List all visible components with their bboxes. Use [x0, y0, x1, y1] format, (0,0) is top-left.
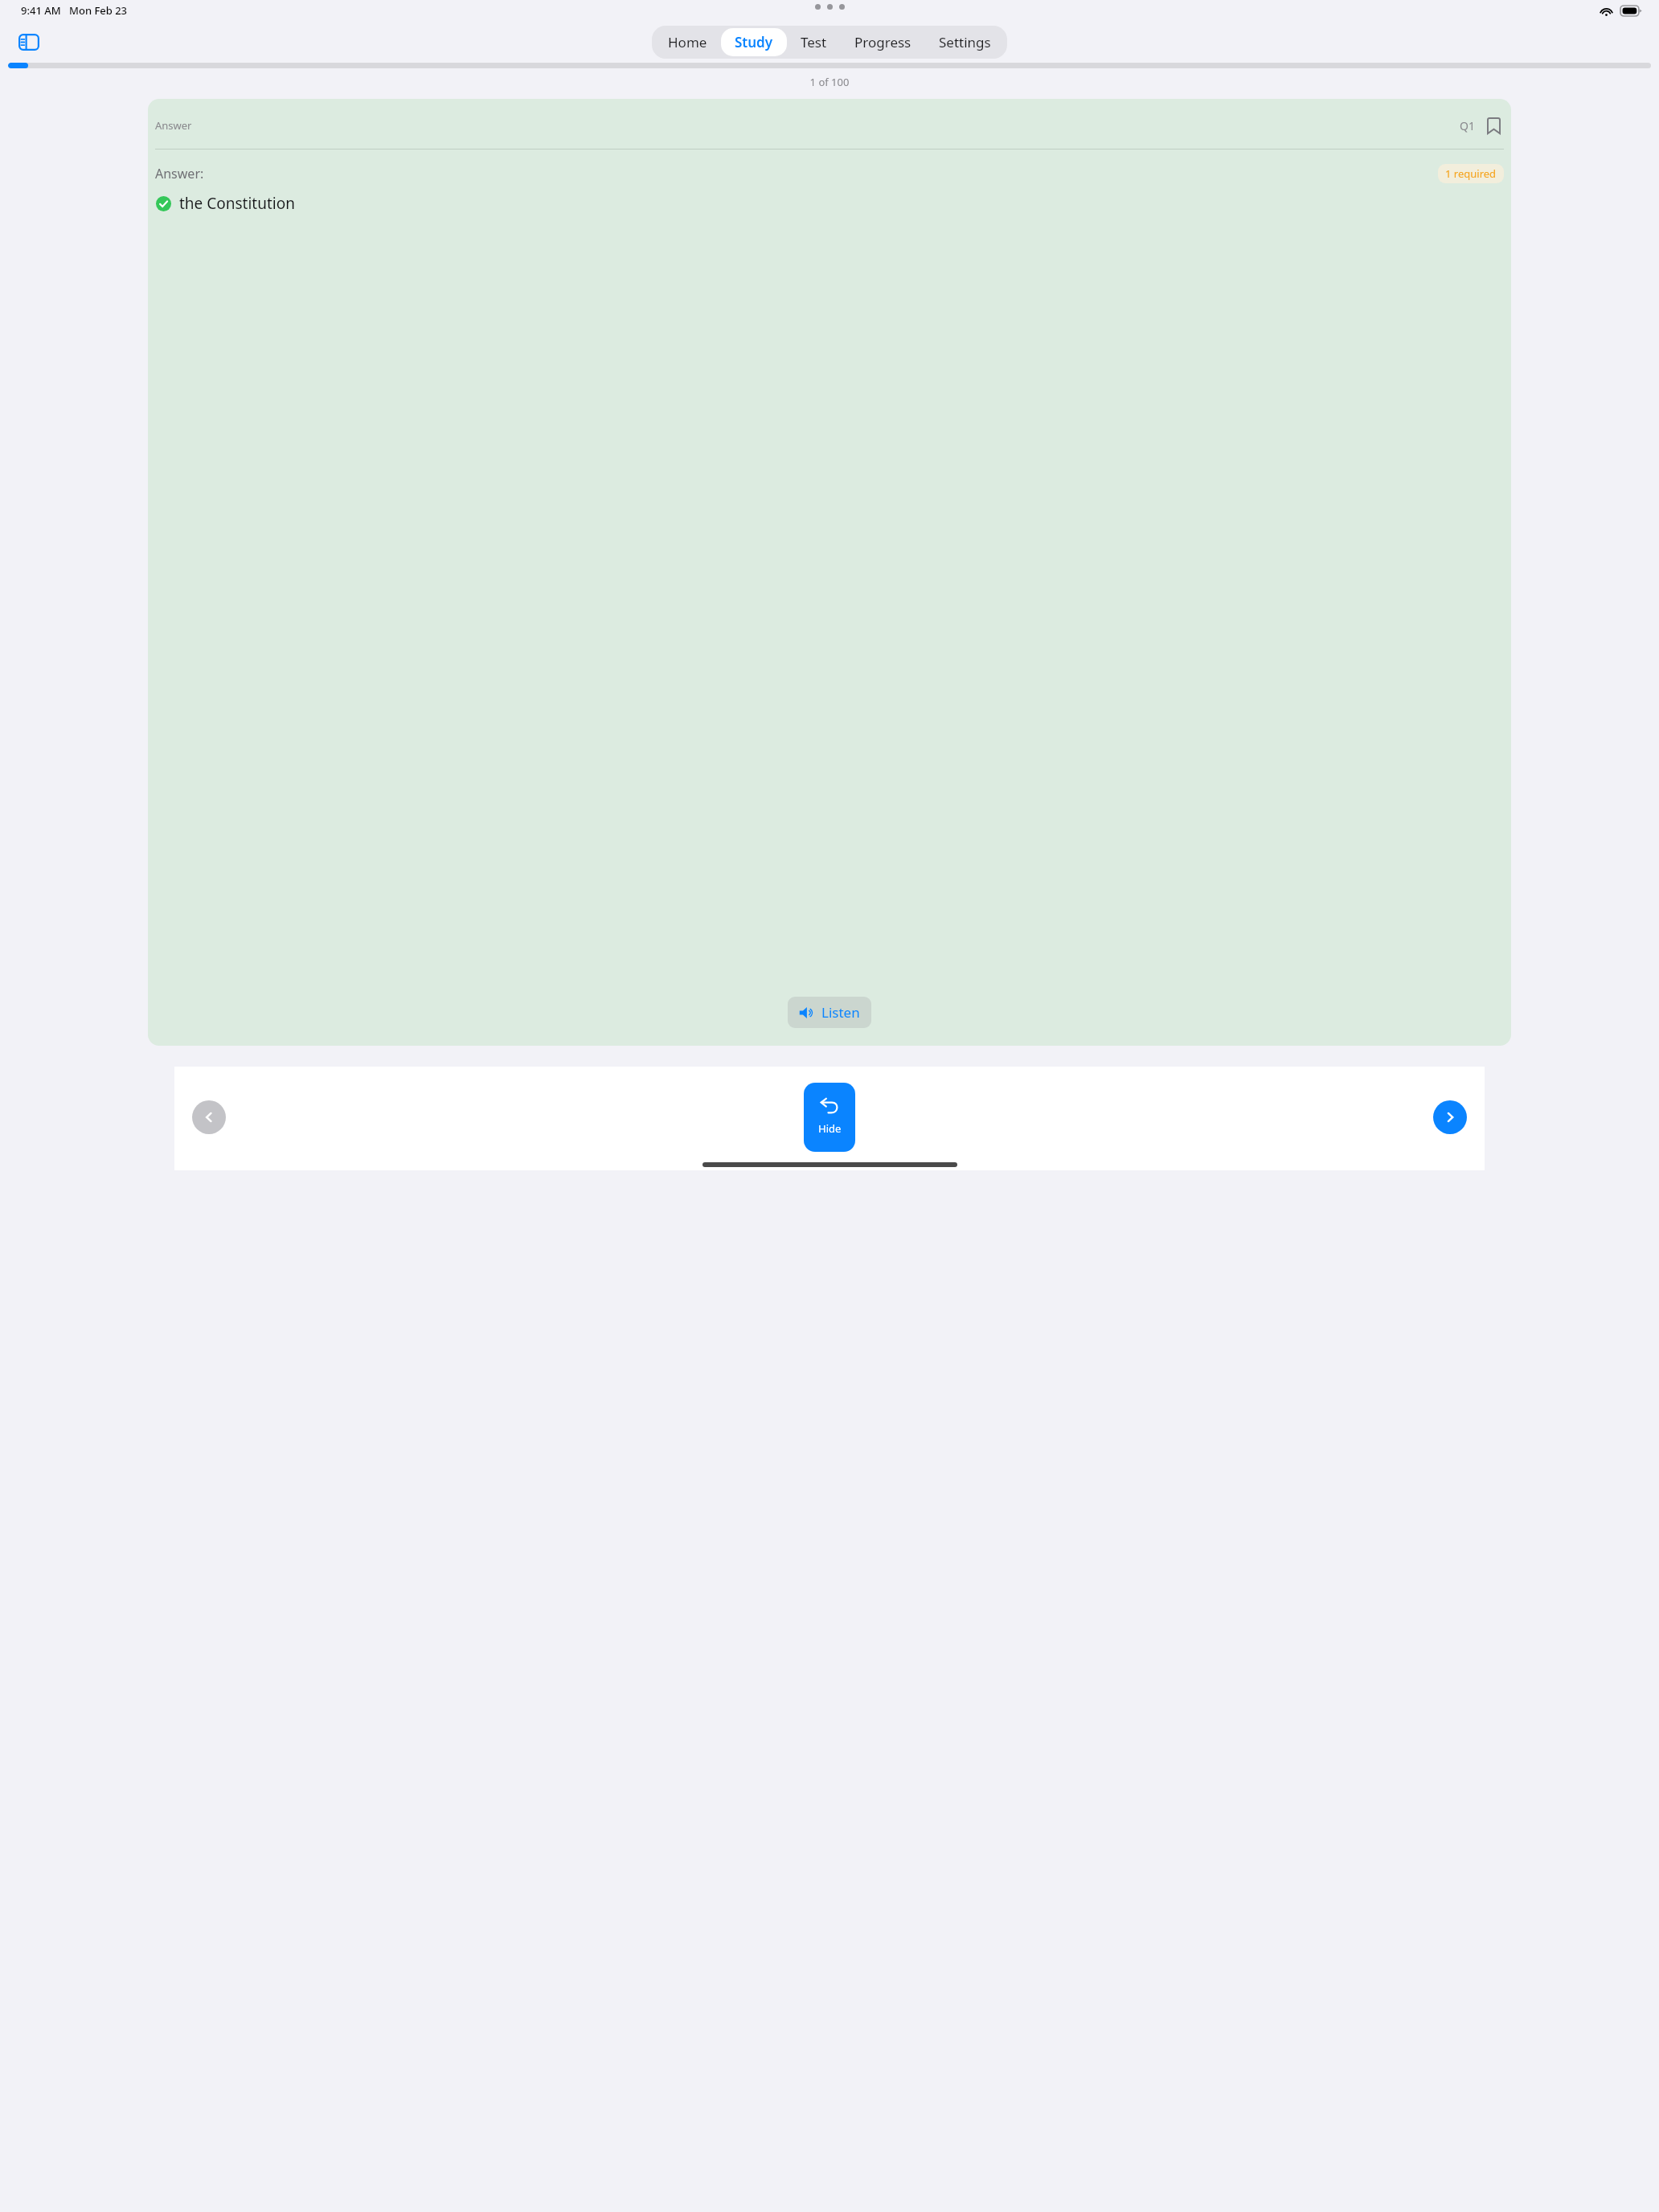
staticText: Mon Feb 23	[69, 3, 128, 18]
staticText: Answer:	[155, 165, 204, 182]
button[interactable]: Home	[654, 28, 721, 56]
staticText: Study	[735, 33, 773, 51]
button[interactable]: Study	[721, 28, 787, 56]
button[interactable]: Bookmark	[1483, 115, 1504, 136]
button[interactable]: Settings	[925, 28, 1005, 56]
button[interactable]: Hide	[804, 1083, 855, 1152]
staticText: Listen	[821, 1003, 860, 1022]
staticText: 1 of 100	[0, 75, 1659, 89]
button[interactable]: Answer	[148, 99, 1511, 1046]
staticText: Q1	[1460, 118, 1475, 133]
staticText: the Constitution	[179, 193, 295, 214]
button[interactable]: Listen	[788, 997, 871, 1028]
staticText: Home	[668, 33, 707, 51]
button[interactable]: Next	[1433, 1100, 1467, 1134]
staticText: Test	[801, 33, 827, 51]
staticText: Hide	[818, 1121, 842, 1136]
staticText: Settings	[939, 33, 991, 51]
staticText: Answer	[155, 118, 192, 133]
button[interactable]: Previous	[192, 1100, 226, 1134]
staticText: 1 required	[1445, 166, 1497, 181]
button[interactable]: Toggle sidebar	[13, 26, 45, 58]
staticText: Progress	[854, 33, 911, 51]
staticText: 9:41 AM	[21, 3, 61, 18]
button[interactable]: Test	[787, 28, 841, 56]
button[interactable]: Progress	[841, 28, 925, 56]
